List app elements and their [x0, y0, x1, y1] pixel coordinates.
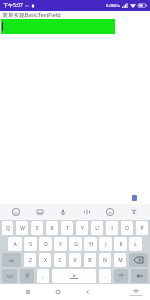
button[interactable]: Clipboard [33, 205, 47, 219]
button[interactable]: I [106, 221, 118, 235]
button[interactable]: C [54, 253, 66, 267]
button[interactable]: Backspace [129, 253, 148, 267]
button[interactable]: 中 [114, 269, 128, 283]
staticText: Q [6, 225, 10, 232]
staticText: Z [29, 257, 32, 264]
button[interactable]: J [99, 237, 112, 251]
button[interactable]: G [69, 237, 82, 251]
button[interactable]: 123 [2, 269, 17, 283]
button[interactable]: Enter [131, 269, 148, 283]
staticText: , [42, 273, 44, 280]
staticText: E [36, 225, 39, 232]
button[interactable]: R [46, 221, 58, 235]
button[interactable]: U [91, 221, 103, 235]
button[interactable]: Emoji [103, 205, 117, 219]
staticText: 简单实现BasicTextField [2, 11, 61, 19]
button[interactable]: X [39, 253, 51, 267]
button[interactable]: E [31, 221, 43, 235]
button[interactable]: 符 [20, 269, 34, 283]
button[interactable]: W [16, 221, 28, 235]
staticText: C [58, 257, 62, 264]
button[interactable]: M [114, 253, 126, 267]
staticText: T [66, 225, 69, 232]
staticText: L [134, 241, 137, 248]
staticText: N [103, 257, 107, 264]
button[interactable]: D [39, 237, 52, 251]
staticText: S [29, 241, 32, 248]
button[interactable]: F [54, 237, 67, 251]
button[interactable]: Z [24, 253, 36, 267]
staticText: P [140, 225, 144, 232]
staticText: K [119, 241, 123, 248]
button[interactable]: V [69, 253, 81, 267]
button[interactable]: Y [76, 221, 88, 235]
staticText: B [88, 257, 92, 264]
button[interactable]: T [61, 221, 73, 235]
staticText: A [13, 241, 17, 248]
staticText: 下午5:07 [3, 2, 23, 9]
button[interactable]: A [8, 237, 22, 251]
button[interactable]: N [99, 253, 111, 267]
button[interactable]: Home [52, 286, 64, 298]
button[interactable]: B [84, 253, 96, 267]
button[interactable]: ab [2, 253, 21, 267]
staticText: D [44, 241, 48, 248]
button[interactable]: Settings [127, 205, 141, 219]
staticText: X [44, 257, 47, 264]
staticText: 符 [25, 273, 30, 279]
staticText: . [104, 273, 106, 280]
button[interactable]: H [84, 237, 97, 251]
button[interactable]: L [129, 237, 142, 251]
button[interactable]: Q [2, 221, 13, 235]
button[interactable]: P [136, 221, 148, 235]
staticText: W [20, 225, 25, 232]
staticText: V [73, 257, 77, 264]
staticText: U [95, 225, 99, 232]
button[interactable]: Space [52, 269, 96, 283]
staticText: H [89, 241, 93, 248]
staticText: R [50, 225, 54, 232]
button[interactable]: Voice input [56, 205, 70, 219]
button[interactable]: , [37, 269, 49, 283]
staticText: 123 [6, 274, 13, 279]
staticText: Y [81, 225, 84, 232]
staticText: G [74, 241, 78, 248]
button[interactable]: . [99, 269, 111, 283]
staticText: 中 [119, 273, 124, 279]
staticText: J [105, 241, 107, 248]
button[interactable]: O [121, 221, 133, 235]
button[interactable]: Back [82, 286, 94, 298]
button[interactable]: Recents [22, 286, 34, 298]
button[interactable]: Move cursor [80, 205, 94, 219]
staticText: I [111, 225, 113, 232]
button[interactable]: S [24, 237, 37, 251]
button[interactable]: K [114, 237, 127, 251]
button[interactable] [1, 19, 115, 34]
button[interactable]: Sticker [9, 205, 23, 219]
staticText: M [118, 257, 123, 264]
button[interactable]: Input method [132, 195, 137, 201]
staticText: F [59, 241, 62, 248]
staticText: ab [9, 258, 14, 263]
staticText: O [125, 225, 129, 232]
staticText: 0.06K/s [106, 3, 120, 8]
